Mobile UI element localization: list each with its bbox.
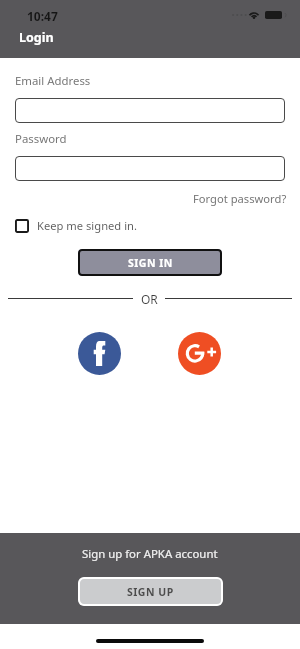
staticText: OR [141,291,158,307]
staticText: Sign up for APKA account [82,546,218,562]
button[interactable]: Sign in with Facebook [78,332,121,375]
staticText: Email Address [15,73,91,89]
button[interactable] [15,98,285,123]
button[interactable]: SIGN UP [78,577,223,606]
button[interactable] [15,156,285,181]
staticText: Password [15,131,67,147]
button[interactable]: Forgot password? [193,191,287,206]
button[interactable]: Sign in with Google Plus [178,332,221,375]
staticText: SIGN IN [128,256,173,270]
staticText: SIGN UP [127,585,174,599]
button[interactable]: SIGN IN [78,249,222,276]
button[interactable]: Keep me signed in. [15,218,137,233]
staticText: Login [19,29,54,46]
staticText: Keep me signed in. [37,218,137,233]
staticText: 10:47 [27,8,58,24]
